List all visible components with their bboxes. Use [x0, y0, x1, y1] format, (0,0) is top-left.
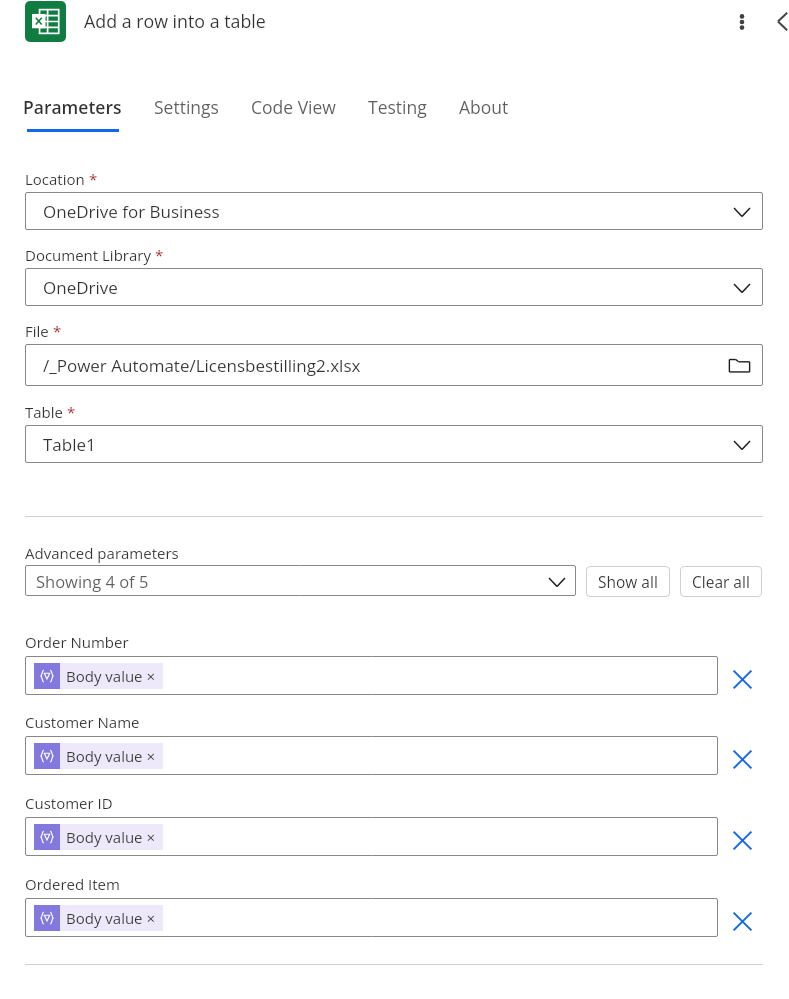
staticText: Settings [154, 95, 219, 119]
staticText: Showing 4 of 5 [36, 570, 149, 592]
staticText: Parameters [23, 95, 122, 119]
button[interactable]: Code View [235, 95, 352, 132]
staticText: Code View [251, 95, 336, 119]
button[interactable]: OneDrive for Business [25, 192, 763, 230]
staticText: * [63, 402, 76, 422]
button[interactable]: Settings [138, 95, 235, 132]
staticText: Body value × [66, 827, 156, 847]
button[interactable]: Body value × [25, 656, 718, 695]
staticText: * [151, 245, 164, 265]
button[interactable]: Remove Customer Name value [720, 737, 764, 781]
button[interactable]: Parameters [7, 95, 138, 132]
staticText: Body value × [66, 746, 156, 766]
button[interactable]: /_Power Automate/Licensbestilling2.xlsx [25, 344, 763, 386]
staticText: Body value × [66, 666, 156, 686]
button[interactable]: Body value × [25, 898, 718, 937]
button[interactable]: Table1 [25, 425, 763, 463]
button[interactable]: Collapse [761, 0, 789, 43]
button[interactable]: Remove Order Number value [720, 657, 764, 701]
button[interactable]: More commands [720, 0, 764, 44]
staticText: About [459, 95, 509, 119]
staticText: OneDrive [43, 276, 118, 299]
staticText: Ordered Item [25, 874, 120, 894]
button[interactable]: OneDrive [25, 268, 763, 306]
staticText: Show all [598, 571, 658, 592]
staticText: Advanced parameters [25, 543, 179, 563]
button[interactable]: Show all [586, 566, 670, 597]
button[interactable]: About [443, 95, 525, 132]
staticText: Table1 [43, 433, 96, 456]
staticText: Testing [368, 95, 427, 119]
staticText: /_Power Automate/Licensbestilling2.xlsx [43, 354, 361, 377]
staticText: Customer ID [25, 793, 113, 813]
button[interactable]: Testing [352, 95, 443, 132]
button[interactable]: Remove Customer ID value [720, 818, 764, 862]
staticText: Order Number [25, 632, 129, 652]
button[interactable]: Remove Ordered Item value [720, 899, 764, 943]
staticText: Clear all [692, 571, 750, 592]
button[interactable]: Browse files [726, 352, 752, 378]
staticText: Add a row into a table [84, 9, 266, 33]
button[interactable]: Body value × [25, 817, 718, 856]
button[interactable]: Body value × [25, 736, 718, 775]
staticText: OneDrive for Business [43, 200, 220, 223]
staticText: Document Library [25, 245, 151, 265]
staticText: Table [25, 402, 63, 422]
staticText: Customer Name [25, 712, 140, 732]
staticText: * [85, 169, 98, 189]
staticText: * [49, 321, 62, 341]
staticText: Body value × [66, 908, 156, 928]
staticText: Location [25, 169, 85, 189]
staticText: File [25, 321, 49, 341]
button[interactable]: Showing 4 of 5 [25, 565, 576, 596]
button[interactable]: Clear all [680, 566, 762, 597]
